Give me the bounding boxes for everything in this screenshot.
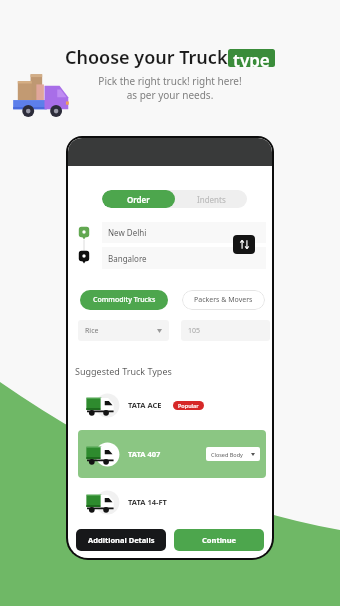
button[interactable]: Order (102, 190, 175, 208)
staticText: New Delhi (108, 227, 147, 238)
button[interactable]: Indents (175, 190, 247, 208)
button[interactable]: Bangalore (108, 247, 266, 269)
button[interactable]: TATA ACE (78, 385, 266, 425)
staticText: TATA 14-FT (128, 497, 167, 507)
button[interactable]: Additional Details (76, 529, 166, 551)
button[interactable]: New Delhi (108, 222, 266, 243)
staticText: Pick the right truck! right here! as per… (60, 74, 280, 102)
staticText: Order (127, 194, 150, 205)
staticText: type (233, 49, 270, 67)
staticText: Popular (178, 402, 199, 409)
button[interactable]: Commodity Trucks (80, 290, 168, 310)
button[interactable]: Rice (85, 320, 162, 341)
button[interactable]: Continue (174, 529, 264, 551)
staticText: Packers & Movers (194, 295, 253, 305)
staticText: Closed Body (211, 451, 243, 458)
staticText: TATA 407 (128, 449, 161, 459)
button[interactable]: Closed Body (211, 447, 255, 461)
button[interactable]: TATA 407 (78, 430, 266, 478)
button[interactable]: TATA 14-FT (78, 482, 266, 522)
staticText: Indents (197, 194, 226, 205)
button[interactable]: Packers & Movers (182, 290, 265, 310)
staticText: Rice (85, 326, 99, 336)
staticText: Commodity Trucks (93, 295, 156, 305)
staticText: TATA ACE (128, 400, 162, 410)
staticText: Choose your Truck (65, 45, 228, 70)
staticText: Continue (202, 535, 237, 545)
staticText: 105 (188, 326, 201, 336)
button[interactable]: Swap pickup and drop locations (233, 235, 255, 254)
staticText: Suggested Truck Types (75, 365, 172, 377)
staticText: Additional Details (88, 535, 155, 545)
staticText: Bangalore (108, 253, 147, 264)
